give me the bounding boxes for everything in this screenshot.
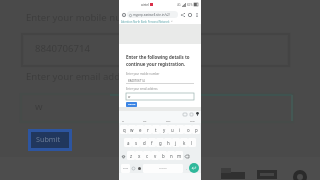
staticText: g bbox=[159, 140, 162, 146]
button[interactable]: Clipboard bbox=[188, 111, 194, 117]
staticText: 8840706714 bbox=[35, 42, 90, 55]
staticText: j bbox=[175, 140, 177, 146]
staticText: w bbox=[128, 95, 131, 99]
staticText: was bbox=[166, 119, 171, 122]
staticText: 8840706714 bbox=[128, 79, 145, 83]
staticText: a bbox=[127, 140, 130, 146]
button[interactable]: More options bbox=[193, 11, 200, 18]
staticText: w bbox=[122, 119, 124, 122]
button[interactable]: i bbox=[176, 125, 184, 134]
staticText: Enter your mobile number bbox=[26, 11, 146, 24]
staticText: . bbox=[186, 167, 187, 171]
staticText: ?123 bbox=[123, 167, 128, 170]
button[interactable]: l bbox=[188, 138, 196, 147]
button[interactable]: y bbox=[160, 125, 168, 134]
button[interactable]: a bbox=[124, 138, 132, 147]
staticText: ∨ bbox=[171, 20, 173, 23]
button[interactable]: g bbox=[156, 138, 164, 147]
staticText: Enter your email address bbox=[126, 87, 158, 91]
button[interactable]: f bbox=[148, 138, 156, 147]
staticText: mypnp.eastwell.site.in/v2/ bbox=[133, 13, 170, 17]
staticText: Enter your mobile number bbox=[126, 72, 160, 76]
staticText: Enter the following details to bbox=[126, 54, 190, 60]
button[interactable]: Switch language bbox=[131, 164, 136, 173]
button[interactable]: English bbox=[143, 164, 183, 173]
staticText: Enter your email address bbox=[26, 70, 139, 83]
button[interactable]: r bbox=[144, 125, 152, 134]
button[interactable]: Settings bbox=[194, 111, 200, 117]
button[interactable]: d bbox=[140, 138, 148, 147]
staticText: q bbox=[123, 127, 126, 133]
button[interactable]: x bbox=[135, 151, 143, 160]
staticText: 82% bbox=[187, 3, 193, 7]
staticText: t bbox=[155, 127, 157, 133]
button[interactable]: b bbox=[159, 151, 167, 160]
button[interactable]: mypnp.eastwell.site.in/v2/ bbox=[127, 11, 178, 18]
staticText: e bbox=[139, 127, 142, 133]
button[interactable]: o bbox=[184, 125, 192, 134]
button[interactable]: Sticker bbox=[182, 111, 188, 117]
button[interactable]: s bbox=[132, 138, 140, 147]
staticText: f bbox=[151, 140, 153, 146]
staticText: n bbox=[170, 153, 173, 159]
staticText: w bbox=[35, 100, 43, 113]
staticText: k bbox=[183, 140, 186, 146]
button[interactable]: Refresh bbox=[186, 11, 193, 18]
button[interactable]: Backspace bbox=[183, 152, 191, 160]
button[interactable]: t bbox=[152, 125, 160, 134]
button[interactable]: c bbox=[143, 151, 151, 160]
button[interactable]: e bbox=[136, 125, 144, 134]
staticText: w bbox=[130, 127, 134, 133]
button[interactable]: u bbox=[168, 125, 176, 134]
button[interactable]: Emoji bbox=[136, 164, 142, 173]
button[interactable]: n bbox=[167, 151, 175, 160]
button[interactable]: Submit bbox=[126, 102, 137, 107]
staticText: airtel bbox=[141, 3, 149, 7]
button[interactable]: m bbox=[175, 151, 183, 160]
button[interactable]: v bbox=[151, 151, 159, 160]
button[interactable]: k bbox=[180, 138, 188, 147]
staticText: b bbox=[162, 153, 165, 159]
button[interactable]: ?123 bbox=[121, 164, 130, 173]
staticText: v bbox=[154, 153, 157, 159]
staticText: s bbox=[135, 140, 138, 146]
staticText: English bbox=[159, 167, 167, 170]
staticText: d bbox=[143, 140, 146, 146]
button[interactable]: Enter bbox=[189, 163, 199, 173]
staticText: x bbox=[138, 153, 141, 159]
staticText: Submit bbox=[128, 103, 136, 106]
staticText: who bbox=[190, 119, 195, 122]
button[interactable]: z bbox=[127, 151, 135, 160]
staticText: z bbox=[130, 153, 133, 159]
staticText: Attention North Bank Personal Network bbox=[121, 20, 170, 24]
button[interactable]: Site information bbox=[120, 11, 127, 18]
button[interactable]: w bbox=[126, 93, 194, 100]
staticText: we bbox=[143, 119, 147, 122]
staticText: l bbox=[191, 140, 193, 146]
staticText: 4G bbox=[177, 3, 181, 7]
staticText: m bbox=[177, 153, 182, 159]
staticText: h bbox=[167, 140, 170, 146]
staticText: y bbox=[163, 127, 166, 133]
staticText: o bbox=[187, 127, 190, 133]
staticText: Submit bbox=[36, 134, 60, 144]
staticText: i bbox=[179, 127, 181, 133]
staticText: c bbox=[146, 153, 149, 159]
button[interactable]: Shift bbox=[119, 152, 127, 160]
staticText: u bbox=[171, 127, 174, 133]
button[interactable]: q bbox=[120, 125, 128, 134]
staticText: continue your registration. bbox=[126, 61, 186, 67]
button[interactable]: w bbox=[128, 125, 136, 134]
button[interactable]: p bbox=[192, 125, 200, 134]
button[interactable]: j bbox=[172, 138, 180, 147]
staticText: r bbox=[147, 127, 149, 133]
button[interactable]: Period bbox=[184, 164, 189, 173]
button[interactable]: h bbox=[164, 138, 172, 147]
button[interactable]: Share bbox=[179, 11, 186, 18]
staticText: p bbox=[195, 127, 198, 133]
